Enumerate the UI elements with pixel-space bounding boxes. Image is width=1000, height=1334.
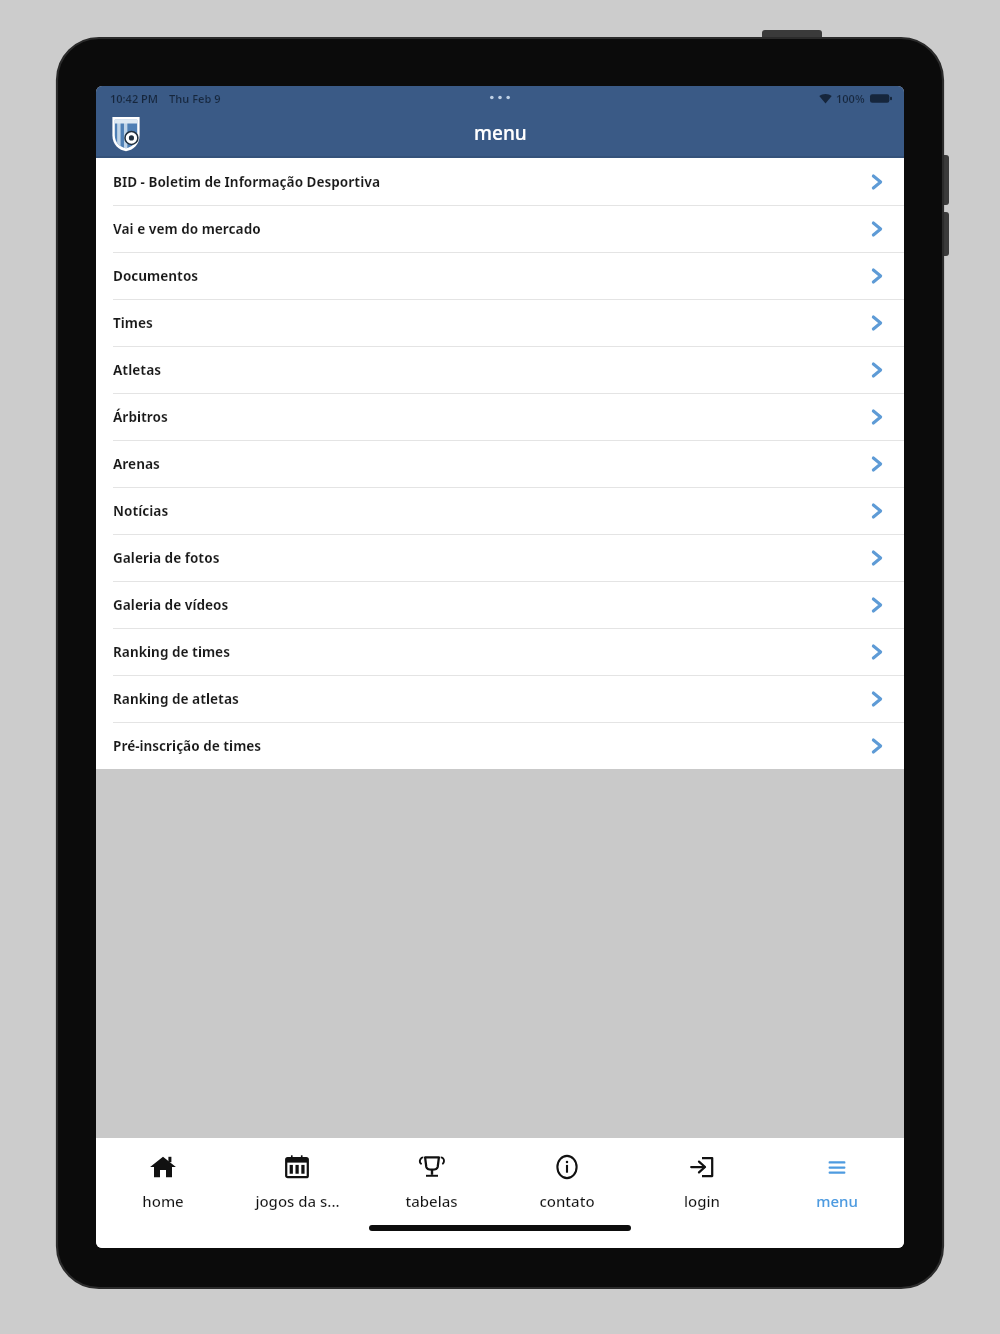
- button[interactable]: Galeria de fotos: [96, 535, 904, 581]
- button[interactable]: Notícias: [96, 488, 904, 534]
- button[interactable]: contato: [499, 1138, 634, 1224]
- staticText: Árbitros: [113, 408, 870, 426]
- button[interactable]: Ranking de times: [96, 629, 904, 675]
- staticText: login: [684, 1191, 720, 1211]
- staticText: Arenas: [113, 455, 870, 473]
- staticText: Notícias: [113, 502, 870, 520]
- button[interactable]: login: [634, 1138, 769, 1224]
- staticText: Galeria de fotos: [113, 549, 870, 567]
- button[interactable]: Vai e vem do mercado: [96, 206, 904, 252]
- button[interactable]: Times: [96, 300, 904, 346]
- button[interactable]: Pré-inscrição de times: [96, 723, 904, 769]
- staticText: BID - Boletim de Informação Desportiva: [113, 173, 870, 191]
- button[interactable]: Documentos: [96, 253, 904, 299]
- button[interactable]: tabelas: [364, 1138, 499, 1224]
- button[interactable]: Ranking de atletas: [96, 676, 904, 722]
- button[interactable]: Atletas: [96, 347, 904, 393]
- button[interactable]: home: [96, 1138, 230, 1224]
- staticText: Times: [113, 314, 870, 332]
- staticText: Ranking de times: [113, 643, 870, 661]
- button[interactable]: jogos da s...: [230, 1138, 364, 1224]
- staticText: Thu Feb 9: [169, 91, 221, 106]
- staticText: 100%: [836, 91, 865, 106]
- staticText: 10:42 PM: [110, 91, 159, 106]
- staticText: Ranking de atletas: [113, 690, 870, 708]
- button[interactable]: Árbitros: [96, 394, 904, 440]
- staticText: tabelas: [405, 1191, 458, 1211]
- staticText: Atletas: [113, 361, 870, 379]
- staticText: contato: [539, 1191, 595, 1211]
- button[interactable]: Galeria de vídeos: [96, 582, 904, 628]
- staticText: menu: [816, 1191, 858, 1211]
- button[interactable]: menu: [769, 1138, 904, 1224]
- staticText: Pré-inscrição de times: [113, 737, 870, 755]
- staticText: Vai e vem do mercado: [113, 220, 870, 238]
- button[interactable]: Arenas: [96, 441, 904, 487]
- staticText: jogos da s...: [255, 1191, 340, 1211]
- button[interactable]: App logo: [106, 113, 146, 153]
- staticText: Documentos: [113, 267, 870, 285]
- staticText: home: [142, 1191, 184, 1211]
- staticText: menu: [474, 120, 527, 146]
- staticText: Galeria de vídeos: [113, 596, 870, 614]
- button[interactable]: BID - Boletim de Informação Desportiva: [96, 158, 904, 205]
